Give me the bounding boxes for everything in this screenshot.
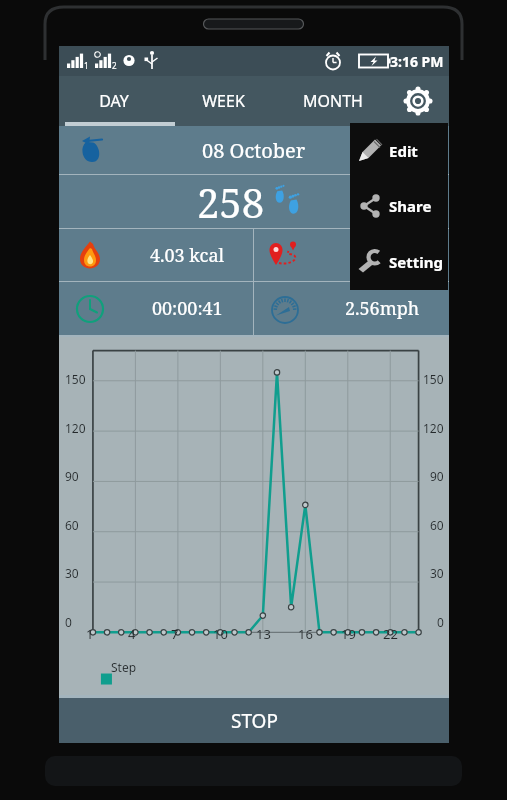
staticText: 60 [65,517,79,533]
staticText: STOP [231,708,278,734]
button[interactable]: Settings [387,76,449,126]
staticText: Setting [389,252,443,272]
staticText: 4.03 kcal [150,243,225,268]
staticText: 08 October [202,137,306,164]
staticText: 2 [112,60,117,71]
staticText: 120 [65,420,86,436]
staticText: 150 [423,371,444,387]
button[interactable]: MONTH [278,76,387,126]
staticText: 258 [197,175,265,228]
staticText: DAY [99,90,129,112]
staticText: 1 [86,625,94,643]
staticText: 7 [171,625,179,643]
staticText: 13 [256,625,271,643]
staticText: WEEK [202,90,245,112]
staticText: 0 [65,614,72,630]
button[interactable]: STOP [59,698,449,743]
staticText: 2.56mph [345,296,420,321]
staticText: 10 [213,625,228,643]
button[interactable]: 00:00:41 [59,282,253,335]
button[interactable]: 2.56mph [254,282,449,335]
button[interactable]: Share [350,178,448,234]
staticText: 90 [430,468,444,484]
button[interactable]: 258 [59,175,449,228]
button[interactable]: WEEK [169,76,278,126]
staticText: 90 [65,468,79,484]
staticText: 00:00:41 [152,296,223,321]
staticText: 150 [65,371,86,387]
button[interactable] [254,229,449,281]
staticText: 1 [84,60,89,71]
button[interactable]: 08 October [59,126,449,174]
staticText: 4 [128,625,136,643]
staticText: 22 [383,625,398,643]
button[interactable]: Edit [350,123,448,178]
staticText: 120 [423,420,444,436]
staticText: 30 [65,565,79,581]
staticText: Edit [389,141,418,161]
staticText: 30 [430,565,444,581]
button[interactable]: 4.03 kcal [59,229,253,281]
staticText: 0 [437,614,444,630]
staticText: 60 [430,517,444,533]
staticText: MONTH [303,90,363,112]
button[interactable]: Setting [350,234,448,290]
staticText: Step [111,659,137,675]
staticText: 19 [341,625,356,643]
staticText: 3:16 PM [390,52,444,71]
staticText: 16 [298,625,313,643]
button[interactable]: DAY [59,76,169,126]
staticText: Share [389,196,432,216]
